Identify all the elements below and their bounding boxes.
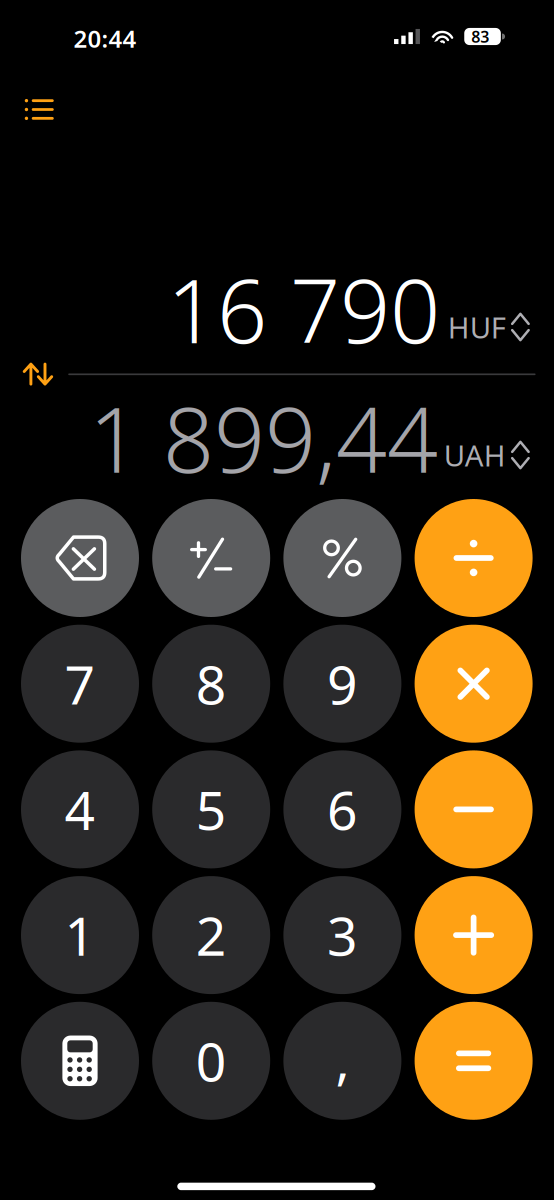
button[interactable]: Swap currencies (12, 350, 64, 398)
staticText: HUF (448, 307, 506, 346)
staticText: 8 (196, 648, 227, 719)
button[interactable]: 8 (152, 625, 270, 743)
button[interactable]: Equals (415, 1002, 533, 1120)
staticText: 3 (327, 900, 358, 970)
button[interactable]: Plus (415, 876, 533, 994)
button[interactable]: Divide (415, 499, 533, 617)
button[interactable]: Calculator (21, 1002, 139, 1120)
button[interactable]: 3 (283, 876, 401, 994)
button[interactable]: 9 (283, 625, 401, 743)
button[interactable]: 0 (152, 1002, 270, 1120)
staticText: 0 (196, 1025, 227, 1096)
staticText: , (335, 1023, 349, 1094)
staticText: 5 (196, 774, 227, 845)
button[interactable]: 7 (21, 625, 139, 743)
button[interactable]: 4 (21, 750, 139, 868)
button[interactable]: Select target currency (442, 431, 530, 479)
staticText: 4 (64, 774, 95, 845)
button[interactable]: 5 (152, 750, 270, 868)
staticText: 1 899,44 (89, 379, 438, 497)
staticText: 16 790 (167, 251, 440, 367)
button[interactable]: Percent (283, 499, 401, 617)
staticText: 83 (471, 26, 489, 47)
staticText: 20:44 (73, 22, 136, 54)
staticText: 6 (327, 774, 358, 845)
button[interactable]: , (283, 1002, 401, 1120)
button[interactable]: Delete (21, 499, 139, 617)
staticText: 7 (64, 648, 95, 719)
staticText: 2 (196, 900, 227, 970)
button[interactable]: Minus (415, 750, 533, 868)
staticText: 1 (64, 900, 95, 970)
button[interactable]: 6 (283, 750, 401, 868)
button[interactable]: 2 (152, 876, 270, 994)
button[interactable]: 1 (21, 876, 139, 994)
staticText: UAH (444, 435, 506, 474)
staticText: 9 (327, 648, 358, 719)
button[interactable]: History (11, 83, 67, 135)
button[interactable]: Select source currency (444, 303, 530, 351)
button[interactable]: Plus minus (152, 499, 270, 617)
button[interactable]: Multiply (415, 625, 533, 743)
